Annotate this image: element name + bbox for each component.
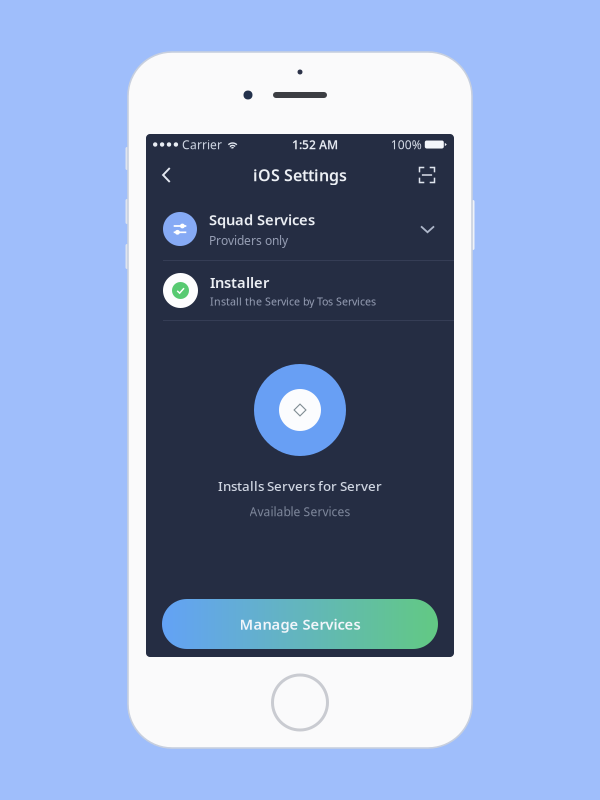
staticText: 100%	[391, 136, 422, 152]
button[interactable]: Squad Services	[146, 198, 454, 260]
button[interactable]: Installer	[146, 261, 454, 320]
staticText: Installs Servers for Server	[218, 477, 382, 495]
staticText: Squad Services	[209, 210, 315, 229]
staticText: iOS Settings	[253, 164, 347, 186]
staticText: Manage Services	[239, 614, 360, 634]
button[interactable]: Scan	[410, 157, 444, 193]
staticText: Available Services	[249, 504, 350, 520]
staticText: Carrier	[182, 136, 222, 152]
staticText: Install the Service by Tos Services	[210, 294, 376, 308]
staticText: Installer	[210, 273, 269, 292]
staticText: Providers only	[209, 232, 288, 248]
staticText: 1:52 AM	[292, 136, 338, 152]
button[interactable]: Manage Services	[162, 599, 438, 649]
button[interactable]: Back	[149, 157, 183, 193]
